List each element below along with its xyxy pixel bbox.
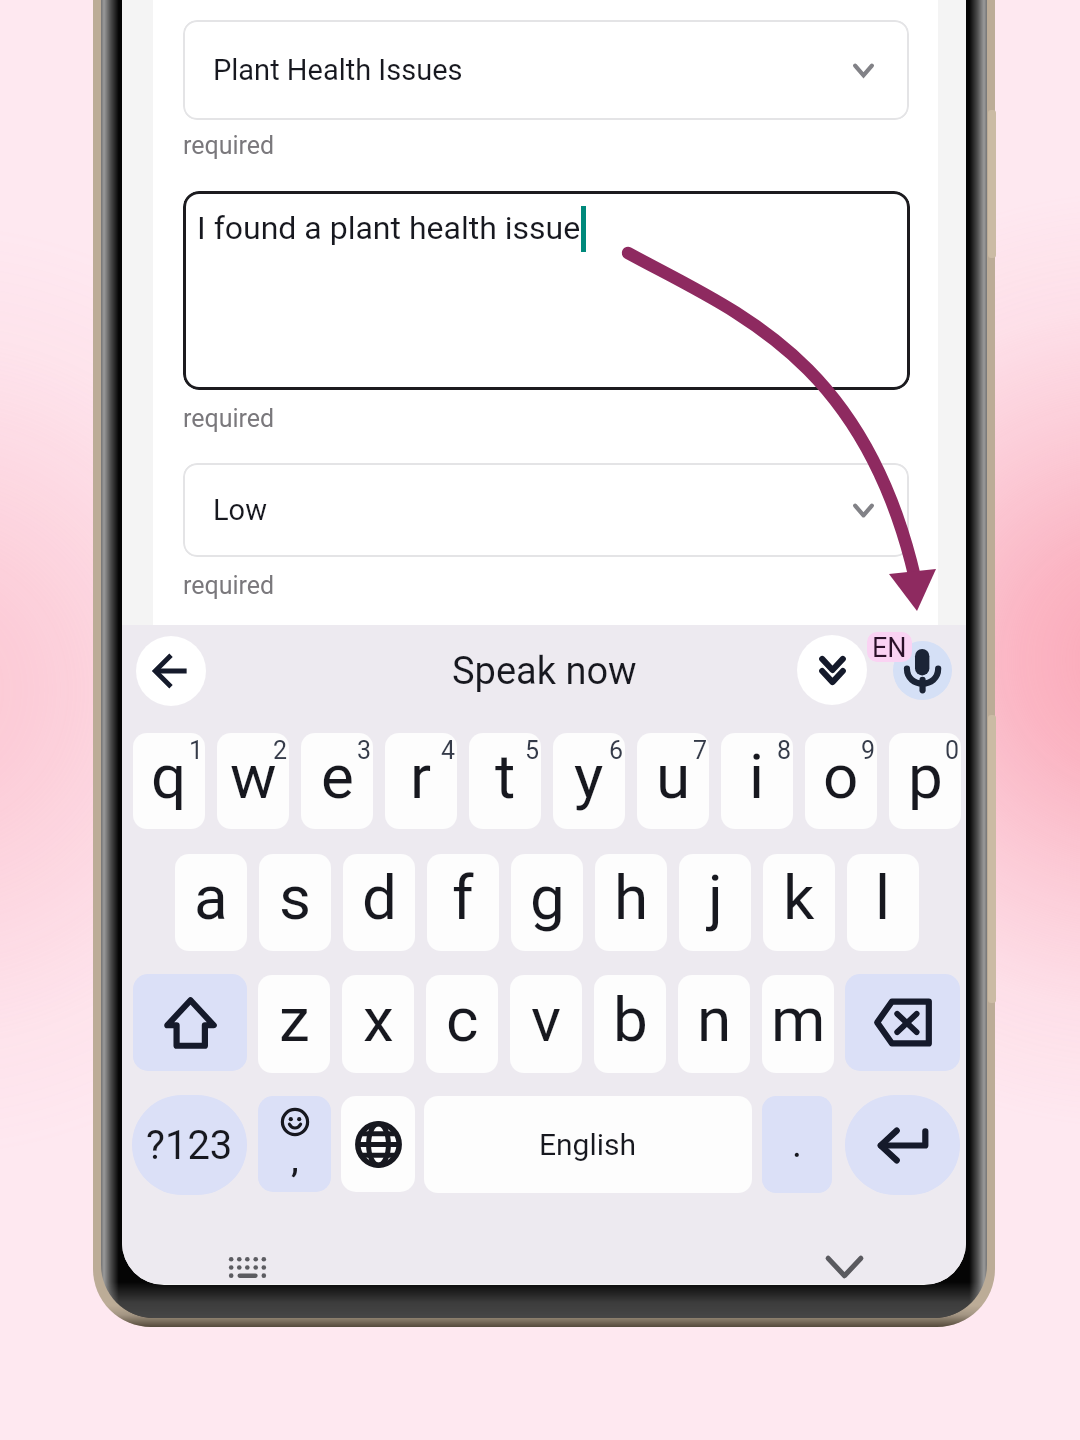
staticText: j <box>708 861 723 934</box>
staticText: r <box>410 740 432 813</box>
staticText: 2 <box>273 736 288 765</box>
button[interactable]: y <box>553 733 625 829</box>
button[interactable]: Emoji and comma <box>258 1096 331 1192</box>
staticText: q <box>151 740 187 813</box>
button[interactable]: m <box>762 975 834 1073</box>
button[interactable]: Change language <box>341 1096 415 1192</box>
button[interactable]: l <box>847 854 919 951</box>
staticText: g <box>530 861 565 934</box>
staticText: m <box>771 983 826 1056</box>
button[interactable]: o <box>805 733 877 829</box>
staticText: d <box>362 861 397 934</box>
staticText: b <box>613 983 648 1056</box>
staticText: ?123 <box>146 1122 233 1169</box>
staticText: x <box>363 983 394 1056</box>
button[interactable]: v <box>510 975 582 1073</box>
button[interactable]: e <box>301 733 373 829</box>
staticText: t <box>495 740 516 813</box>
button[interactable]: Collapse keyboard <box>797 635 867 705</box>
button[interactable]: Back <box>136 636 206 706</box>
staticText: , <box>291 1142 299 1180</box>
button[interactable]: z <box>258 975 330 1073</box>
staticText: u <box>656 740 691 813</box>
button[interactable]: g <box>511 854 583 951</box>
button[interactable]: n <box>678 975 750 1073</box>
staticText: required <box>183 131 275 160</box>
staticText: z <box>279 983 310 1056</box>
button[interactable]: ?123 <box>132 1095 247 1195</box>
button[interactable]: d <box>343 854 415 951</box>
button[interactable]: p <box>889 733 961 829</box>
button[interactable]: Low <box>183 463 909 557</box>
button[interactable]: q <box>133 733 205 829</box>
staticText: 5 <box>525 736 540 765</box>
staticText: 6 <box>609 736 624 765</box>
staticText: English <box>539 1127 637 1162</box>
button[interactable]: r <box>385 733 457 829</box>
button[interactable]: h <box>595 854 667 951</box>
staticText: required <box>183 571 275 600</box>
staticText: v <box>531 983 562 1056</box>
staticText: 4 <box>441 736 456 765</box>
button[interactable]: Hide keyboard <box>820 1248 869 1285</box>
staticText: k <box>783 861 815 934</box>
button[interactable]: t <box>469 733 541 829</box>
staticText: c <box>446 983 479 1056</box>
staticText: s <box>279 861 311 934</box>
staticText: 9 <box>861 736 876 765</box>
button[interactable]: f <box>427 854 499 951</box>
button[interactable]: w <box>217 733 289 829</box>
staticText: l <box>875 861 891 934</box>
button[interactable]: j <box>679 854 751 951</box>
button[interactable]: c <box>426 975 498 1073</box>
button[interactable]: a <box>175 854 247 951</box>
staticText: y <box>574 740 604 813</box>
button[interactable]: x <box>342 975 414 1073</box>
staticText: n <box>697 983 732 1056</box>
staticText: 1 <box>189 736 204 765</box>
staticText: . <box>792 1122 803 1167</box>
staticText: Plant Health Issues <box>213 53 463 87</box>
button[interactable]: i <box>721 733 793 829</box>
button[interactable]: u <box>637 733 709 829</box>
staticText: I found a plant health issue <box>197 209 581 247</box>
staticText: w <box>230 740 277 813</box>
staticText: e <box>321 740 354 813</box>
button[interactable]: k <box>763 854 835 951</box>
staticText: 7 <box>693 736 708 765</box>
button[interactable]: I found a plant health issue <box>183 191 910 390</box>
staticText: required <box>183 404 275 433</box>
button[interactable]: Plant Health Issues <box>183 20 909 120</box>
button[interactable]: . <box>762 1096 832 1193</box>
staticText: f <box>452 861 474 934</box>
staticText: 3 <box>357 736 372 765</box>
staticText: Speak now <box>452 649 637 694</box>
staticText: p <box>908 740 943 813</box>
staticText: o <box>823 740 859 813</box>
button[interactable]: Backspace <box>845 974 960 1071</box>
staticText: EN <box>872 632 907 662</box>
button[interactable]: s <box>259 854 331 951</box>
button[interactable]: Enter <box>845 1095 960 1195</box>
staticText: i <box>749 740 765 813</box>
button[interactable]: English <box>424 1096 752 1193</box>
staticText: 8 <box>777 736 792 765</box>
staticText: a <box>194 861 228 934</box>
staticText: Low <box>213 493 267 527</box>
button[interactable]: Shift <box>133 974 247 1071</box>
staticText: h <box>614 861 649 934</box>
staticText: 0 <box>945 736 960 765</box>
button[interactable]: Voice input <box>893 641 952 700</box>
button[interactable]: b <box>594 975 666 1073</box>
